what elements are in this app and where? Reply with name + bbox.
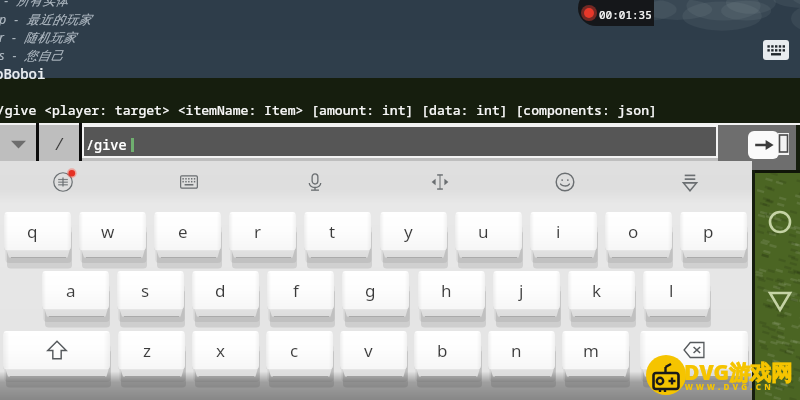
- staticText: i: [556, 220, 561, 243]
- staticText: @s - 您自己: [0, 47, 64, 64]
- button[interactable]: Shift: [3, 331, 110, 377]
- button[interactable]: j: [493, 271, 560, 317]
- staticText: t: [329, 220, 336, 243]
- staticText: c: [290, 339, 299, 362]
- button[interactable]: y: [380, 212, 447, 258]
- staticText: e - 所有实体: [0, 0, 69, 9]
- button[interactable]: o: [605, 212, 672, 258]
- staticText: g: [365, 279, 376, 302]
- button[interactable]: a: [42, 271, 109, 317]
- staticText: d: [215, 279, 226, 302]
- button[interactable]: t: [304, 212, 371, 258]
- button[interactable]: /: [39, 123, 79, 161]
- staticText: oBoboi: [0, 64, 46, 83]
- button[interactable]: n: [488, 331, 555, 377]
- button[interactable]: v: [340, 331, 407, 377]
- button[interactable]: p: [680, 212, 747, 258]
- button[interactable]: Recording timer: [578, 0, 654, 26]
- staticText: 00:01:35: [599, 7, 652, 22]
- button[interactable]: h: [418, 271, 485, 317]
- button[interactable]: Emoji: [502, 161, 627, 203]
- button[interactable]: Keyboard layout: [126, 161, 252, 203]
- button[interactable]: k: [568, 271, 635, 317]
- button[interactable]: Voice input: [252, 161, 377, 203]
- staticText: p: [703, 220, 714, 243]
- staticText: x: [216, 339, 225, 362]
- button[interactable]: u: [455, 212, 522, 258]
- staticText: /: [56, 132, 63, 155]
- staticText: u: [478, 220, 489, 243]
- button[interactable]: g: [342, 271, 409, 317]
- button[interactable]: Input method: [0, 161, 126, 203]
- staticText: q: [27, 220, 38, 243]
- staticText: s: [141, 279, 150, 302]
- button[interactable]: m: [562, 331, 629, 377]
- button[interactable]: f: [267, 271, 334, 317]
- staticText: r: [254, 220, 262, 243]
- button[interactable]: w: [79, 212, 146, 258]
- button[interactable]: x: [192, 331, 259, 377]
- staticText: a: [66, 279, 76, 302]
- button[interactable]: z: [118, 331, 185, 377]
- staticText: l: [669, 279, 674, 302]
- staticText: m: [583, 339, 599, 362]
- staticText: j: [519, 279, 524, 302]
- staticText: e: [178, 220, 188, 243]
- button[interactable]: /give: [84, 127, 716, 156]
- button[interactable]: Backspace: [640, 331, 748, 377]
- button[interactable]: q: [4, 212, 71, 258]
- button[interactable]: Send: [748, 131, 779, 159]
- button[interactable]: r: [229, 212, 296, 258]
- button[interactable]: i: [530, 212, 597, 258]
- staticText: b: [437, 339, 448, 362]
- staticText: o: [628, 220, 639, 243]
- staticText: DVG游戏网: [684, 358, 793, 387]
- button[interactable]: Move cursor: [377, 161, 502, 203]
- staticText: @p - 最近的玩家: [0, 11, 92, 28]
- button[interactable]: e: [154, 212, 221, 258]
- button[interactable]: s: [117, 271, 184, 317]
- button[interactable]: c: [266, 331, 333, 377]
- button[interactable]: d: [192, 271, 259, 317]
- staticText: w: [101, 220, 115, 243]
- staticText: k: [592, 279, 602, 302]
- button[interactable]: l: [643, 271, 710, 317]
- staticText: /give <player: target> <itemName: Item> …: [0, 101, 657, 119]
- staticText: /give: [86, 136, 127, 154]
- staticText: @r - 随机玩家: [0, 29, 76, 46]
- button[interactable]: Hide keyboard: [627, 161, 752, 203]
- staticText: y: [404, 220, 413, 243]
- button[interactable]: Toggle keyboard: [763, 40, 789, 60]
- button[interactable]: Expand suggestions: [0, 123, 36, 161]
- staticText: n: [511, 339, 522, 362]
- staticText: f: [293, 279, 299, 302]
- staticText: W W W . D V G . C N: [685, 381, 772, 392]
- staticText: z: [143, 339, 151, 362]
- staticText: v: [364, 339, 373, 362]
- staticText: h: [441, 279, 452, 302]
- button[interactable]: b: [414, 331, 481, 377]
